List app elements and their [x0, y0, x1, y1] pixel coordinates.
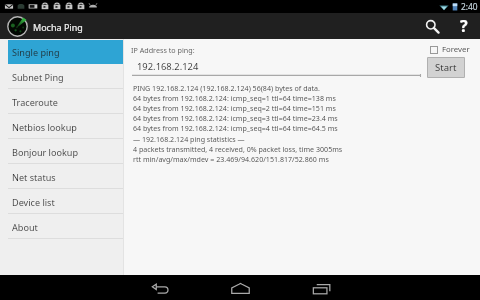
staticText: Device list: [12, 196, 55, 208]
staticText: 64 bytes from 192.168.2.124: icmp_seq=4 …: [133, 123, 338, 133]
button[interactable]: Net status: [0, 164, 124, 189]
staticText: 64 bytes from 192.168.2.124: icmp_seq=3 …: [133, 113, 338, 123]
staticText: — 192.168.2.124 ping statistics —: [133, 134, 245, 144]
button[interactable]: Home: [200, 275, 280, 300]
staticText: Subnet Ping: [12, 71, 64, 83]
button[interactable]: Start: [427, 57, 465, 78]
staticText: Mocha Ping: [33, 21, 83, 33]
staticText: IP Address to ping:: [131, 45, 195, 55]
staticText: PING 192.168.2.124 (192.168.2.124) 56(84…: [133, 83, 320, 93]
staticText: Traceroute: [12, 96, 58, 108]
button[interactable]: Help: [447, 13, 480, 39]
staticText: Bonjour lookup: [12, 146, 79, 158]
button[interactable]: Forever: [430, 44, 470, 55]
staticText: 4 packets transmitted, 4 received, 0% pa…: [133, 144, 343, 154]
button[interactable]: About: [0, 214, 124, 239]
button[interactable]: Device list: [0, 189, 124, 214]
staticText: Forever: [442, 44, 470, 55]
button[interactable]: Traceroute: [0, 89, 124, 114]
staticText: 192.168.2.124: [137, 60, 199, 73]
staticText: 64 bytes from 192.168.2.124: icmp_seq=2 …: [133, 103, 336, 113]
staticText: ?: [460, 15, 468, 37]
button[interactable]: Search: [414, 13, 447, 39]
button[interactable]: Bonjour lookup: [0, 139, 124, 164]
button[interactable]: Single ping: [0, 39, 124, 64]
staticText: About: [12, 221, 38, 233]
staticText: 64 bytes from 192.168.2.124: icmp_seq=1 …: [133, 93, 336, 103]
staticText: rtt min/avg/max/mdev = 23.469/94.620/151…: [133, 154, 329, 164]
staticText: 2:40: [461, 1, 478, 12]
staticText: Single ping: [12, 46, 60, 58]
button[interactable]: Back: [120, 275, 200, 300]
button[interactable]: Subnet Ping: [0, 64, 124, 89]
button[interactable]: Netbios lookup: [0, 114, 124, 139]
staticText: Net status: [12, 171, 56, 183]
staticText: Netbios lookup: [12, 121, 77, 133]
button[interactable]: Recent apps: [281, 275, 361, 300]
staticText: Start: [435, 61, 457, 74]
